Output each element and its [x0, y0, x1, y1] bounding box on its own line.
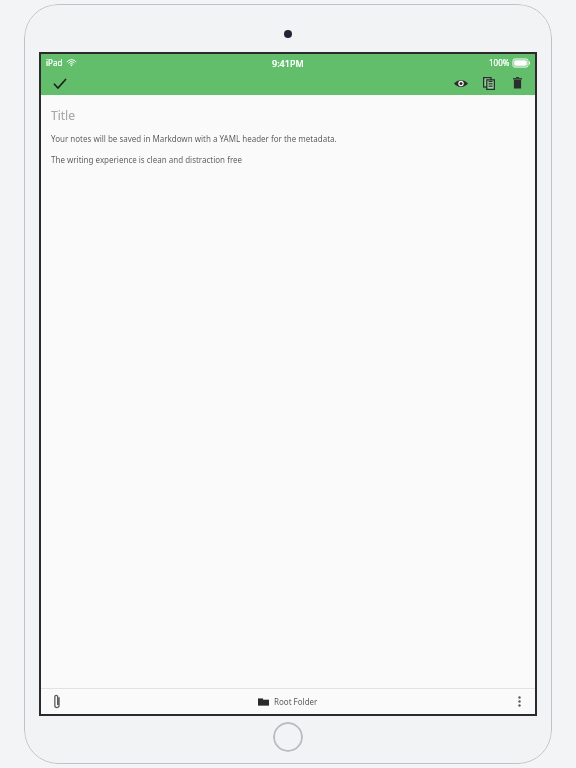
button[interactable]: Root Folder [254, 693, 322, 710]
staticText: iPad [46, 57, 63, 68]
button[interactable]: More options [509, 691, 529, 711]
button[interactable]: Preview [451, 73, 471, 93]
staticText: Root Folder [274, 696, 318, 707]
button[interactable]: Notes [479, 73, 499, 93]
staticText: 9:41PM [272, 57, 304, 69]
button[interactable]: Done [49, 72, 71, 94]
button[interactable]: Home [273, 722, 303, 752]
button[interactable]: The writing experience is clean and dist… [51, 154, 525, 165]
button[interactable]: Attach [47, 691, 67, 711]
staticText: 100% [489, 57, 510, 68]
button[interactable]: Your notes will be saved in Markdown wit… [51, 133, 525, 144]
button[interactable]: Title [51, 107, 525, 123]
button[interactable]: Delete [507, 73, 527, 93]
